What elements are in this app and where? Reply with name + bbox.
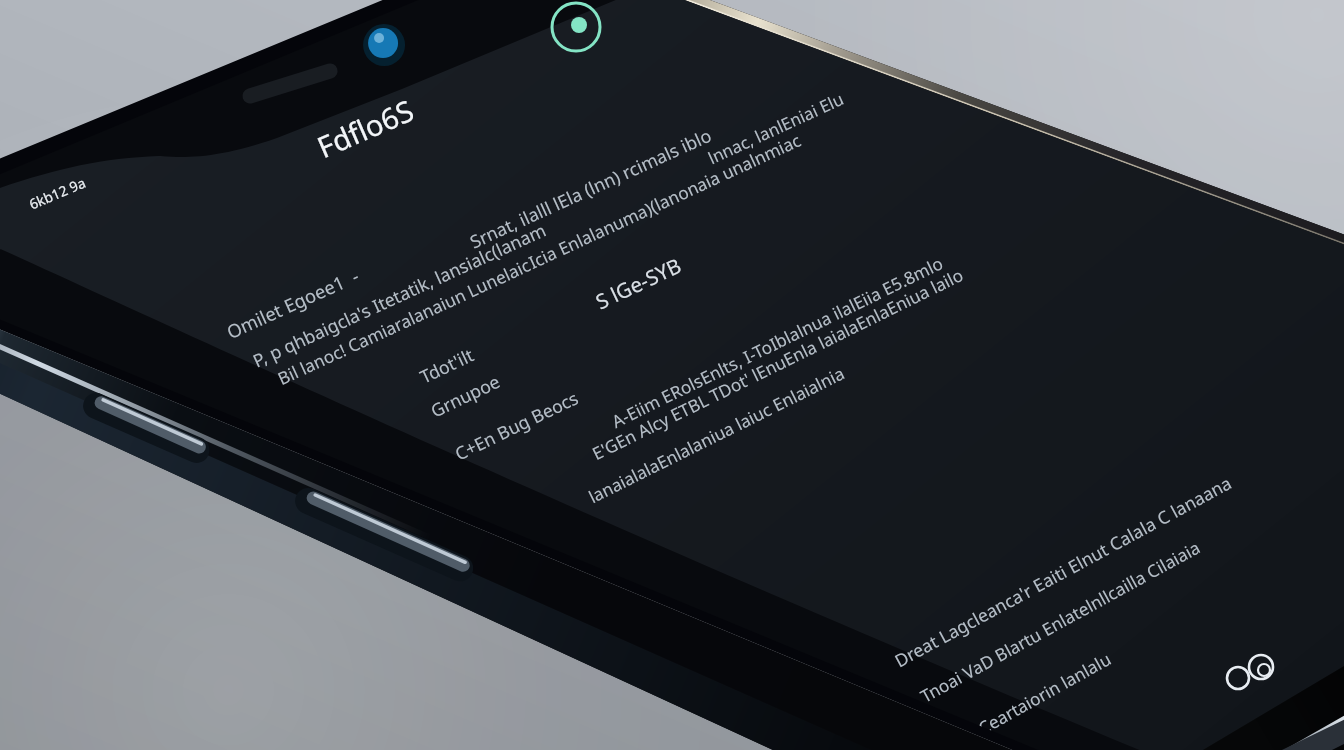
button[interactable]: Smartphone product photo	[0, 0, 1344, 750]
